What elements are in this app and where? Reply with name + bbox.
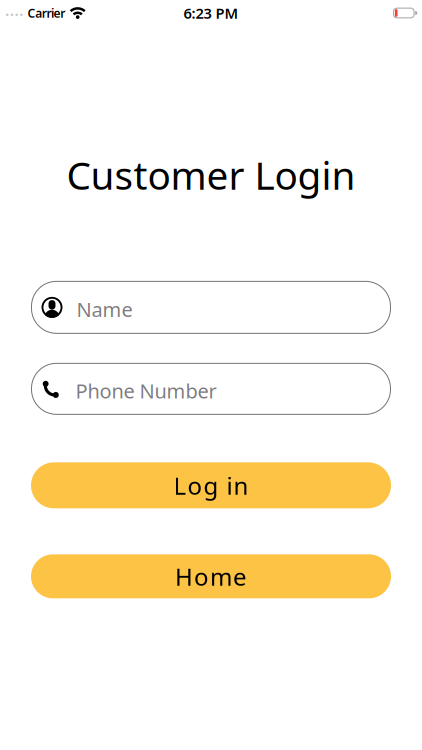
staticText: Phone Number bbox=[31, 374, 194, 404]
staticText: Carrier bbox=[28, 5, 65, 21]
button[interactable]: Home bbox=[31, 554, 391, 598]
textField[interactable]: Name bbox=[31, 292, 390, 322]
staticText: Name bbox=[76, 296, 132, 323]
staticText: Name bbox=[31, 292, 95, 322]
staticText: Log in bbox=[173, 469, 248, 501]
textField[interactable]: Phone Number bbox=[31, 374, 390, 404]
button[interactable]: Log in bbox=[31, 462, 391, 508]
staticText: Home bbox=[175, 560, 247, 592]
staticText: 6:23 PM bbox=[183, 3, 238, 23]
staticText: Customer Login bbox=[66, 149, 355, 200]
staticText: Phone Number bbox=[75, 378, 216, 404]
